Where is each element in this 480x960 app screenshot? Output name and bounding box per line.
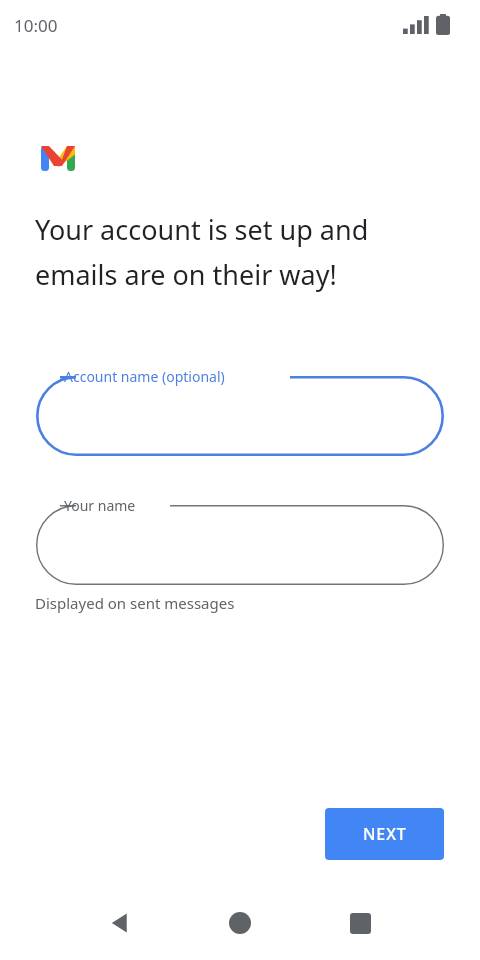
button[interactable]: NEXT [325,808,444,860]
staticText: 10:00 [14,14,58,37]
button[interactable]: Recent apps [326,886,394,960]
staticText: Account name (optional) [64,367,225,386]
button[interactable]: Home [206,886,274,960]
button[interactable]: Back [86,886,154,960]
staticText: Displayed on sent messages [35,593,235,613]
staticText: Your account is set up and emails are on… [35,211,415,293]
button[interactable]: Account name (optional) [36,376,444,456]
button[interactable]: Your name [36,505,444,585]
staticText: Your name [64,496,136,515]
staticText: NEXT [363,823,407,845]
